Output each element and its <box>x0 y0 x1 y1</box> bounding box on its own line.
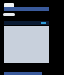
button[interactable] <box>3 13 15 16</box>
button[interactable] <box>4 3 14 7</box>
